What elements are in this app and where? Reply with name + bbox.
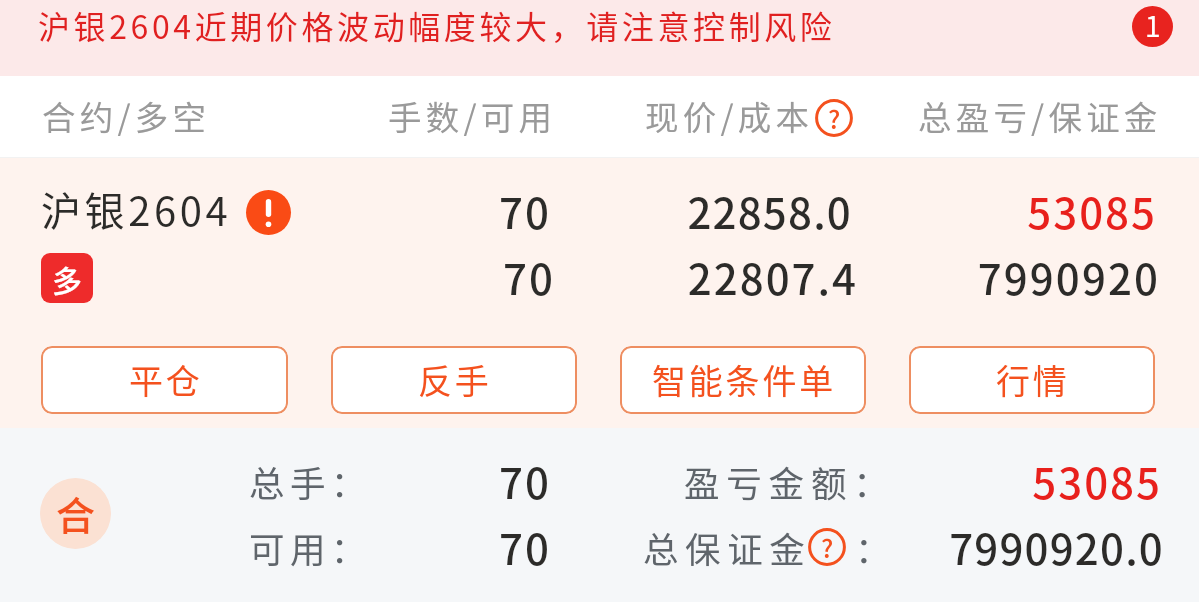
button[interactable]: 多 [41, 253, 93, 303]
button[interactable]: 沪银2604近期价格波动幅度较大，请注意控制风险 [0, 0, 1199, 76]
staticText: 盈亏金额： [684, 456, 896, 507]
staticText: 多 [52, 257, 82, 300]
staticText: ? [828, 100, 841, 136]
staticText: 总保证金 [643, 522, 812, 573]
button[interactable]: 平仓 [41, 346, 288, 414]
staticText: 70 [372, 450, 551, 511]
button[interactable]: 智能条件单 [620, 346, 866, 414]
staticText: 7990920.0 [897, 516, 1164, 577]
staticText: 智能条件单 [652, 355, 836, 404]
staticText: 1 [1145, 6, 1161, 46]
staticText: 70 [0, 180, 551, 241]
button[interactable]: Help [808, 528, 846, 566]
staticText: 70 [0, 246, 555, 307]
staticText: 手数/可用 [388, 91, 557, 140]
staticText: 行情 [996, 355, 1070, 404]
staticText: 反手 [418, 355, 492, 404]
button[interactable]: 行情 [909, 346, 1155, 414]
staticText: 22858.0 [551, 180, 852, 241]
button[interactable]: 合 [40, 478, 111, 549]
button[interactable]: 1 notification [1132, 6, 1173, 47]
staticText: 沪银2604 [41, 180, 232, 238]
staticText: 22807.4 [555, 246, 858, 307]
staticText: 现价/成本 [645, 91, 814, 140]
staticText: 合约/多空 [42, 91, 211, 140]
button[interactable]: 反手 [331, 346, 577, 414]
staticText: ： [855, 522, 891, 573]
other: Warning [246, 190, 291, 235]
staticText: 沪银2604近期价格波动幅度较大，请注意控制风险 [38, 2, 836, 48]
staticText: 7990920 [858, 246, 1160, 307]
staticText: 总盈亏/保证金 [918, 91, 1162, 140]
staticText: 可用： [249, 522, 372, 573]
button[interactable]: Help [815, 99, 853, 137]
staticText: 合 [56, 485, 96, 541]
staticText: 平仓 [129, 355, 203, 404]
staticText: 总手： [249, 456, 372, 507]
staticText: 53085 [896, 450, 1162, 511]
staticText: 53085 [852, 180, 1157, 241]
staticText: ? [821, 529, 834, 565]
staticText: 70 [372, 516, 551, 577]
